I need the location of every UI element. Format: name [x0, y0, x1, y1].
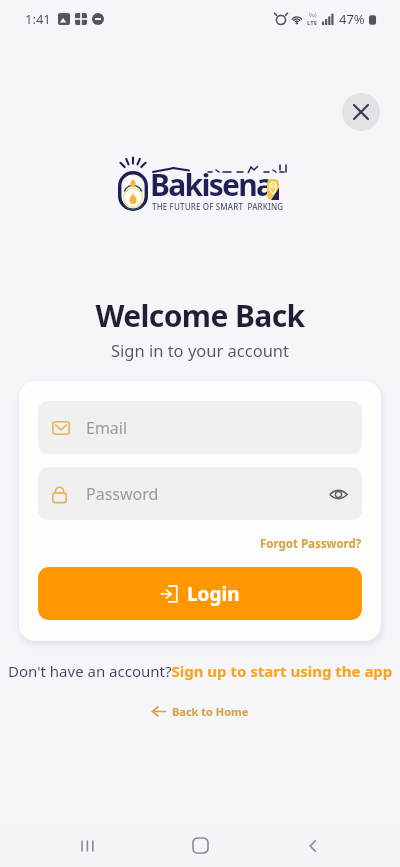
button[interactable]: Show password — [325, 481, 351, 507]
staticText: Bakisena — [150, 164, 273, 205]
button[interactable]: Back — [288, 824, 338, 867]
button[interactable]: Home — [175, 824, 225, 867]
button[interactable]: Close — [342, 93, 380, 131]
staticText: Sign in to your account — [0, 339, 400, 361]
staticText: 47% — [339, 10, 365, 28]
button[interactable]: Recents — [63, 824, 113, 867]
staticText: Back to Home — [172, 704, 249, 719]
button[interactable]: Don't have an account?Sign up to start u… — [8, 661, 393, 681]
staticText: Email — [86, 417, 128, 439]
button[interactable]: Login — [38, 567, 362, 620]
staticText: Welcome Back — [0, 295, 400, 336]
button[interactable]: Back to Home — [143, 700, 257, 723]
staticText: Password — [86, 483, 325, 505]
staticText: Vo) — [309, 12, 317, 19]
staticText: 1:41 — [25, 10, 51, 28]
staticText: LTE — [307, 19, 318, 27]
staticText: Login — [187, 581, 240, 607]
button[interactable]: Email — [38, 401, 362, 454]
button[interactable]: Forgot Password? — [260, 530, 362, 558]
button[interactable]: Password — [38, 467, 362, 520]
staticText: THE FUTURE OF SMART PARKING — [152, 201, 284, 212]
